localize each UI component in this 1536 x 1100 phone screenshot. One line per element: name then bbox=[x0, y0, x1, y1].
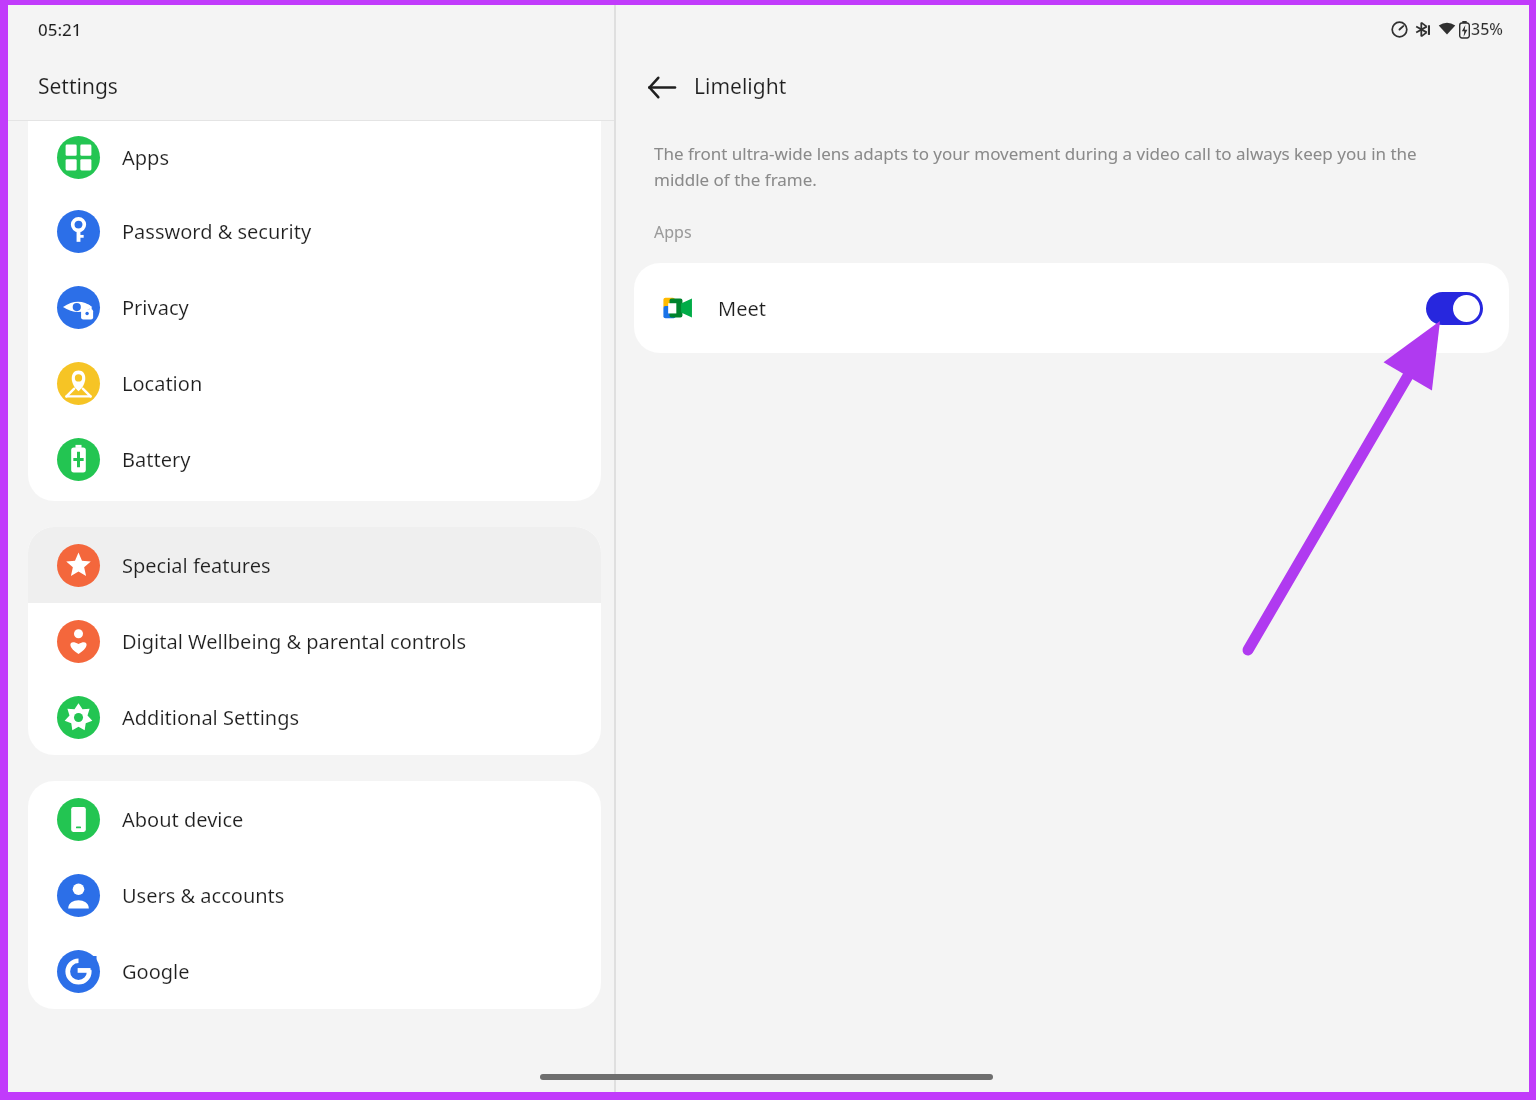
button[interactable]: Digital Wellbeing & parental controls bbox=[28, 603, 601, 679]
button[interactable]: Meet bbox=[634, 263, 1509, 353]
button[interactable]: Back bbox=[638, 64, 684, 110]
staticText: Digital Wellbeing & parental controls bbox=[122, 628, 467, 655]
staticText: Meet bbox=[718, 295, 766, 322]
staticText: Location bbox=[122, 370, 203, 397]
staticText: About device bbox=[122, 806, 244, 833]
staticText: Privacy bbox=[122, 294, 189, 321]
staticText: 05:21 bbox=[38, 18, 82, 41]
staticText: Users & accounts bbox=[122, 882, 285, 909]
button[interactable]: Password & security bbox=[28, 193, 601, 269]
staticText: Special features bbox=[122, 552, 271, 579]
button[interactable]: Google bbox=[28, 933, 601, 1009]
staticText: The front ultra-wide lens adapts to your… bbox=[654, 142, 1459, 191]
staticText: Apps bbox=[654, 221, 692, 243]
staticText: Additional Settings bbox=[122, 704, 300, 731]
staticText: Apps bbox=[122, 144, 169, 171]
staticText: Password & security bbox=[122, 218, 312, 245]
button[interactable]: Additional Settings bbox=[28, 679, 601, 755]
button[interactable]: Location bbox=[28, 345, 601, 421]
button[interactable]: Users & accounts bbox=[28, 857, 601, 933]
button[interactable]: Battery bbox=[28, 421, 601, 497]
button[interactable]: Special features bbox=[28, 527, 601, 603]
staticText: Battery bbox=[122, 446, 191, 473]
staticText: Limelight bbox=[694, 72, 787, 101]
button[interactable]: Apps bbox=[28, 121, 601, 193]
button[interactable]: About device bbox=[28, 781, 601, 857]
staticText: 35% bbox=[1471, 18, 1503, 40]
button[interactable]: Privacy bbox=[28, 269, 601, 345]
button[interactable]: Meet, on bbox=[1426, 292, 1483, 325]
staticText: Google bbox=[122, 958, 190, 985]
staticText: Settings bbox=[38, 72, 118, 101]
